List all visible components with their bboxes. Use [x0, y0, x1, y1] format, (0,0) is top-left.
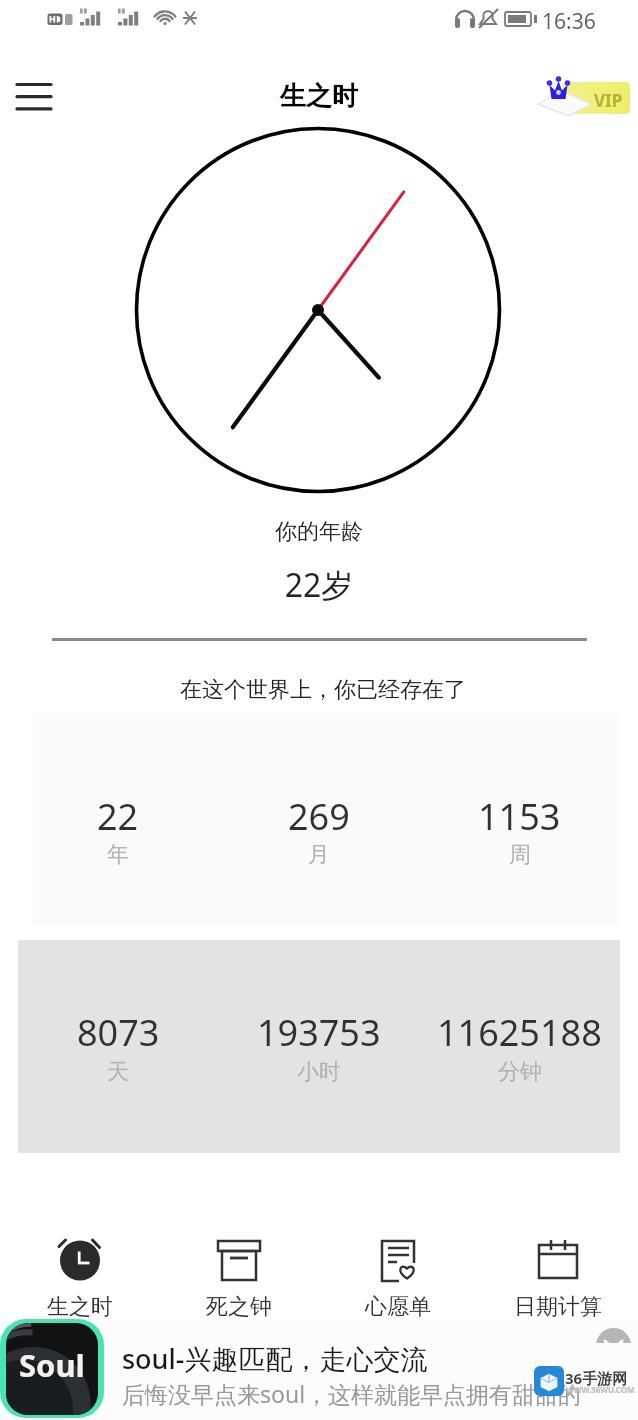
- button[interactable]: 日期计算: [478, 1222, 638, 1320]
- staticText: 在这个世界上，你已经存在了: [4, 676, 638, 704]
- button[interactable]: Menu: [4, 65, 64, 115]
- staticText: 死之钟: [206, 1293, 272, 1321]
- staticText: 年: [107, 841, 129, 869]
- staticText: 日期计算: [514, 1293, 602, 1321]
- button[interactable]: 生之时: [0, 1222, 159, 1320]
- staticText: 天: [107, 1058, 129, 1086]
- staticText: 你的年龄: [0, 518, 638, 546]
- button[interactable]: Collapse ad: [596, 1328, 632, 1343]
- staticText: 36手游网: [565, 1368, 628, 1388]
- button[interactable]: VIP: [520, 60, 638, 122]
- staticText: soul-兴趣匹配，走心交流: [122, 1340, 428, 1377]
- staticText: 16:36: [542, 7, 596, 36]
- staticText: 分钟: [498, 1058, 542, 1086]
- staticText: WWW.36WU.COM: [566, 1384, 635, 1395]
- button[interactable]: 心愿单: [318, 1222, 478, 1320]
- staticText: Soul: [19, 1344, 85, 1386]
- staticText: 11625188: [437, 1008, 602, 1057]
- staticText: 22岁: [0, 563, 638, 607]
- staticText: 小时: [297, 1058, 341, 1086]
- staticText: 8073: [77, 1008, 160, 1057]
- staticText: 月: [308, 841, 330, 869]
- staticText: 后悔没早点来soul，这样就能早点拥有甜甜的: [122, 1378, 582, 1409]
- staticText: VIP: [594, 89, 623, 112]
- staticText: 周: [509, 841, 531, 869]
- staticText: 269: [288, 792, 350, 841]
- staticText: 生之时: [0, 80, 638, 113]
- staticText: 生之时: [47, 1293, 113, 1321]
- staticText: 193753: [257, 1008, 381, 1057]
- staticText: 1153: [478, 792, 561, 841]
- staticText: 22: [97, 792, 139, 841]
- button[interactable]: Soul: [0, 1321, 638, 1420]
- staticText: 心愿单: [365, 1293, 431, 1321]
- button[interactable]: 死之钟: [159, 1222, 318, 1320]
